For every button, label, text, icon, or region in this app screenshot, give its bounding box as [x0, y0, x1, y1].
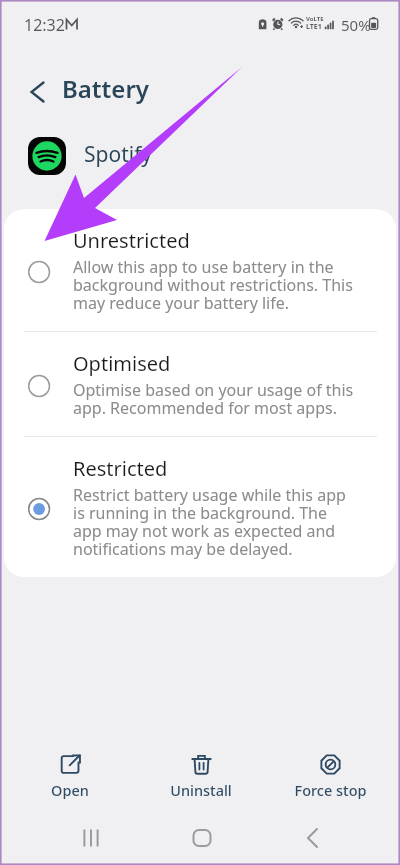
button[interactable]: Back — [292, 817, 334, 859]
staticText: Force stop — [294, 780, 367, 800]
button[interactable]: Back — [20, 74, 56, 110]
button[interactable]: Uninstall — [146, 750, 256, 804]
staticText: Optimise based on your usage of this app… — [73, 382, 356, 418]
staticText: Uninstall — [170, 780, 232, 800]
staticText: Optimised — [73, 354, 171, 376]
staticText: 12:32 — [24, 18, 65, 35]
staticText: Open — [51, 780, 89, 800]
button[interactable]: Restricted — [4, 437, 396, 577]
button[interactable]: Optimised — [4, 332, 396, 436]
button[interactable]: Open — [15, 750, 125, 804]
staticText: Restrict battery usage while this app is… — [73, 487, 356, 559]
staticText: 50% — [341, 18, 371, 34]
staticText: LTE1 — [306, 23, 322, 31]
staticText: Unrestricted — [73, 231, 190, 253]
staticText: Battery — [62, 78, 149, 104]
button[interactable]: Force stop — [275, 750, 385, 804]
staticText: Restricted — [73, 459, 168, 481]
button[interactable]: Unrestricted — [4, 209, 396, 331]
button[interactable]: Recent apps — [70, 817, 112, 859]
staticText: VoLTE — [306, 16, 324, 23]
staticText: Allow this app to use battery in the bac… — [73, 259, 356, 313]
staticText: Spotify — [84, 144, 153, 167]
button[interactable]: Home — [181, 817, 223, 859]
